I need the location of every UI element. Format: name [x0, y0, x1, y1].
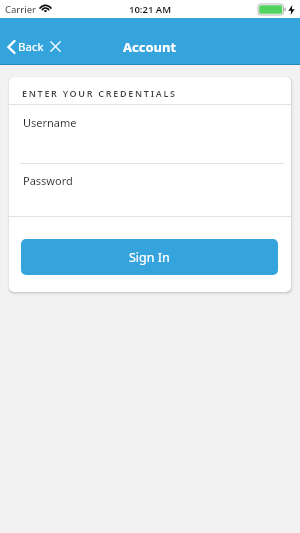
staticText: 10:21 AM: [129, 3, 172, 16]
staticText: Account: [123, 38, 177, 56]
button[interactable]: Back: [7, 28, 61, 65]
staticText: Sign In: [129, 249, 170, 266]
button[interactable]: Username: [9, 105, 291, 163]
staticText: Back: [18, 39, 44, 55]
staticText: Carrier: [5, 3, 36, 16]
button[interactable]: Password: [9, 164, 291, 216]
staticText: Username: [23, 115, 77, 130]
button[interactable]: Sign In: [21, 239, 278, 275]
staticText: ENTER YOUR CREDENTIALS: [22, 87, 177, 99]
staticText: Password: [23, 173, 73, 188]
button[interactable]: [50, 41, 61, 52]
